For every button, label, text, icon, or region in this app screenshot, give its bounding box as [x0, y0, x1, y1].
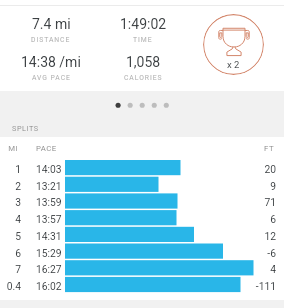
staticText: AVG PACE	[32, 74, 71, 82]
button[interactable]: 7	[0, 260, 284, 277]
staticText: 16:02	[36, 280, 62, 292]
staticText: 4	[0, 213, 21, 225]
staticText: MI	[0, 144, 18, 153]
staticText: TIME	[133, 36, 153, 44]
staticText: 12	[236, 230, 276, 242]
button[interactable]: 2	[0, 177, 284, 194]
staticText: -6	[236, 247, 276, 259]
staticText: 7	[0, 263, 21, 275]
staticText: 14:03	[36, 163, 62, 175]
button[interactable]: 0.4	[0, 277, 284, 294]
button[interactable]: 1	[0, 160, 284, 177]
staticText: 1,058	[126, 54, 161, 70]
staticText: 20	[236, 163, 276, 175]
staticText: 13:21	[36, 180, 62, 192]
button[interactable]: Achievements, 2 trophies	[203, 14, 264, 75]
staticText: 15:29	[36, 247, 62, 259]
staticText: SPLITS	[12, 124, 39, 133]
staticText: 1	[0, 163, 21, 175]
staticText: 71	[236, 196, 276, 208]
staticText: -111	[236, 280, 276, 292]
staticText: 1:49:02	[120, 16, 167, 32]
staticText: 3	[0, 196, 21, 208]
staticText: PACE	[36, 144, 57, 153]
staticText: CALORIES	[124, 74, 163, 82]
staticText: 9	[236, 180, 276, 192]
button[interactable]: 3	[0, 193, 284, 210]
staticText: 4	[236, 263, 276, 275]
staticText: 14:31	[36, 230, 62, 242]
staticText: 13:57	[36, 213, 62, 225]
staticText: 6	[236, 213, 276, 225]
staticText: 13:59	[36, 196, 62, 208]
button[interactable]: 6	[0, 244, 284, 261]
staticText: 0.4	[0, 280, 21, 292]
staticText: 14:38 /mi	[21, 54, 81, 70]
staticText: 2	[0, 180, 21, 192]
staticText: DISTANCE	[31, 36, 71, 44]
staticText: 5	[0, 230, 21, 242]
staticText: 16:27	[36, 263, 62, 275]
staticText: FT	[234, 144, 274, 153]
staticText: 6	[0, 247, 21, 259]
staticText: 7.4 mi	[32, 16, 71, 32]
staticText: x 2	[227, 59, 240, 70]
button[interactable]: 5	[0, 227, 284, 244]
button[interactable]: 4	[0, 210, 284, 227]
